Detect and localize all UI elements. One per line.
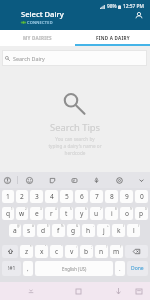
staticText: u [94, 209, 99, 218]
button[interactable]: r [45, 207, 58, 220]
button[interactable]: 2 [16, 190, 28, 203]
staticText: & [76, 224, 79, 228]
staticText: You can search by typing a dairy's name … [25, 136, 125, 157]
button[interactable]: y [75, 207, 88, 220]
button[interactable]: Emoji [21, 172, 37, 188]
button[interactable]: Recents [130, 282, 148, 300]
staticText: 7 [95, 192, 99, 201]
staticText: 7 [100, 207, 102, 211]
button[interactable]: p [135, 207, 148, 220]
staticText: ! [106, 245, 107, 249]
button[interactable]: English (US) [35, 261, 113, 276]
button[interactable]: h [82, 224, 95, 237]
staticText: Search Tips [50, 121, 101, 134]
button[interactable]: b [80, 245, 93, 258]
button[interactable]: Home [69, 282, 87, 300]
staticText: ? [120, 245, 122, 249]
button[interactable]: o [120, 207, 133, 220]
staticText: s [27, 226, 31, 235]
staticText: x [40, 247, 44, 256]
button[interactable]: a [9, 224, 21, 237]
button[interactable]: Done [127, 261, 148, 276]
staticText: 5 [70, 207, 72, 211]
button[interactable]: m [110, 245, 123, 258]
button[interactable]: e [30, 207, 43, 220]
button[interactable]: Stickers [44, 172, 60, 188]
staticText: FIND A DAIRY [96, 35, 130, 41]
button[interactable]: q [2, 207, 14, 220]
button[interactable]: Voice typing [0, 172, 15, 188]
staticText: Select Dairy [21, 9, 64, 19]
button[interactable]: FIND A DAIRY [75, 30, 150, 46]
staticText: , [27, 265, 29, 273]
button[interactable]: Backspace [125, 245, 148, 258]
staticText: l [133, 226, 135, 235]
button[interactable]: 7 [90, 190, 103, 203]
button[interactable]: k [112, 224, 125, 237]
staticText: 5 [65, 192, 69, 201]
button[interactable]: 1 [2, 190, 14, 203]
button[interactable]: 5 [60, 190, 73, 203]
staticText: CONNECTED [27, 20, 53, 25]
staticText: 9 [130, 207, 132, 211]
button[interactable]: . [115, 261, 125, 276]
staticText: 0 [140, 192, 144, 201]
button[interactable]: l [127, 224, 140, 237]
staticText: ; [91, 245, 92, 249]
staticText: 1 [6, 192, 10, 201]
staticText: d [41, 226, 46, 235]
staticText: v [70, 247, 74, 256]
button[interactable]: n [95, 245, 108, 258]
button[interactable]: Account [131, 8, 146, 23]
staticText: 6 [85, 207, 87, 211]
button[interactable]: w [16, 207, 28, 220]
button[interactable]: MY DAIRIES [0, 30, 75, 46]
button[interactable]: u [90, 207, 103, 220]
button[interactable]: z [20, 245, 33, 258]
staticText: t [65, 209, 68, 218]
button[interactable]: x [35, 245, 48, 258]
button[interactable]: v [65, 245, 78, 258]
staticText: !#1 [8, 265, 16, 272]
button[interactable]: 9 [120, 190, 133, 203]
button[interactable]: Collapse [133, 172, 149, 188]
button[interactable]: Search Dairy [2, 50, 147, 66]
staticText: a [13, 226, 17, 235]
staticText: y [80, 209, 84, 218]
button[interactable]: 0 [135, 190, 148, 203]
button[interactable]: c [50, 245, 63, 258]
button[interactable]: Hide keyboard [22, 282, 40, 300]
staticText: ) [138, 224, 139, 228]
button[interactable]: Clipboard [66, 172, 82, 188]
staticText: c [55, 247, 59, 256]
button[interactable]: g [67, 224, 80, 237]
button[interactable]: i [105, 207, 118, 220]
staticText: b [84, 247, 89, 256]
button[interactable]: s [23, 224, 35, 237]
button[interactable]: d [37, 224, 50, 237]
staticText: w [19, 209, 25, 218]
staticText: p [139, 209, 144, 218]
button[interactable]: t [60, 207, 73, 220]
staticText: English (US) [62, 266, 87, 272]
staticText: g [71, 226, 76, 235]
button[interactable]: 8 [105, 190, 118, 203]
button[interactable]: Shift [2, 245, 18, 258]
button[interactable]: Microphone [88, 172, 104, 188]
button[interactable]: 4 [45, 190, 58, 203]
staticText: 9 [125, 192, 129, 201]
button[interactable]: Settings [111, 172, 127, 188]
staticText: + [107, 224, 109, 228]
button[interactable]: 6 [75, 190, 88, 203]
button[interactable]: f [52, 224, 65, 237]
staticText: n [99, 247, 104, 256]
button[interactable]: j [97, 224, 110, 237]
button[interactable]: !#1 [2, 261, 21, 276]
staticText: % [61, 224, 64, 228]
button[interactable]: Back [109, 282, 127, 300]
staticText: f [57, 226, 60, 235]
button[interactable]: , [23, 261, 33, 276]
staticText: e [35, 209, 39, 218]
button[interactable]: 3 [30, 190, 43, 203]
staticText: j [103, 226, 105, 235]
